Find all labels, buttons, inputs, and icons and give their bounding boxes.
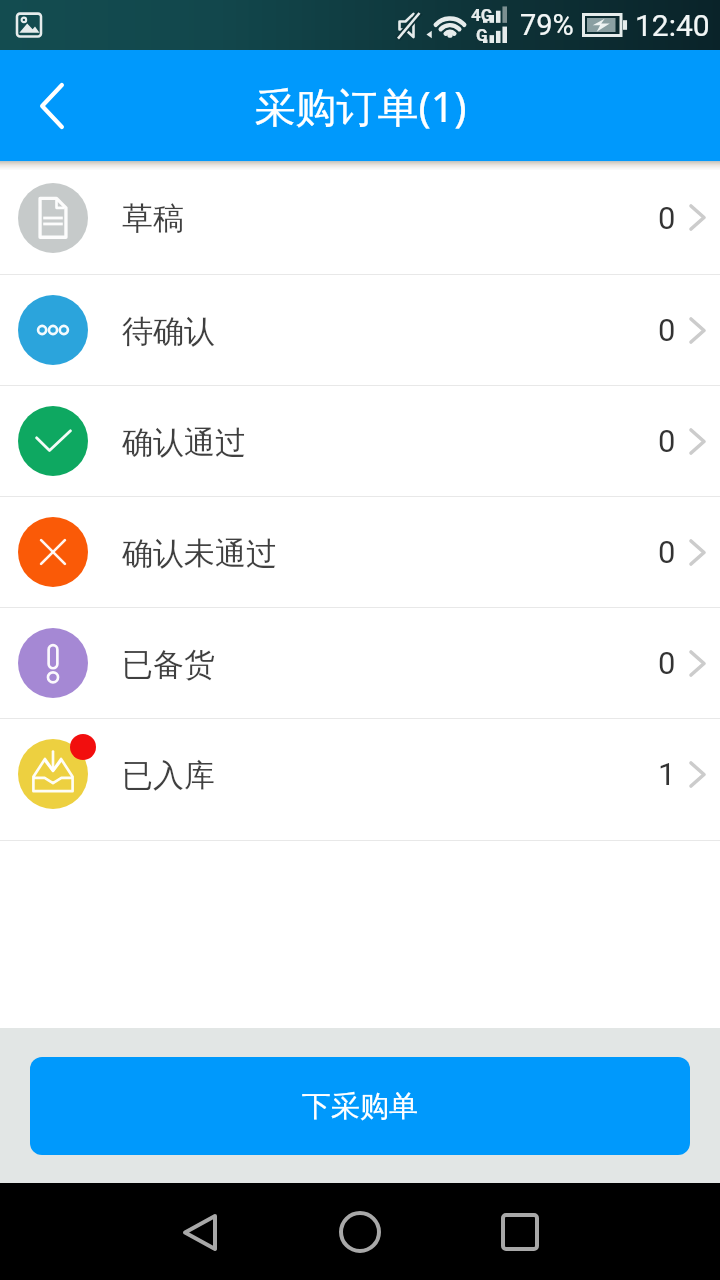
staticText: 0: [658, 312, 676, 348]
staticText: 12:40: [635, 8, 710, 43]
staticText: 已备货: [122, 645, 215, 684]
staticText: 采购订单(1): [254, 78, 467, 134]
button[interactable]: 草稿: [0, 161, 720, 274]
staticText: 已入库: [122, 756, 215, 795]
staticText: G: [476, 25, 488, 45]
button[interactable]: Back: [0, 50, 100, 161]
button[interactable]: Home: [320, 1192, 400, 1272]
staticText: 0: [658, 423, 676, 459]
staticText: 确认未通过: [122, 534, 277, 573]
staticText: 下采购单: [302, 1088, 418, 1125]
button[interactable]: 确认未通过: [0, 497, 720, 607]
staticText: 0: [658, 534, 676, 570]
button[interactable]: Recents: [480, 1192, 560, 1272]
staticText: 4G: [471, 5, 493, 25]
staticText: 0: [658, 200, 676, 236]
staticText: 0: [658, 645, 676, 681]
staticText: 草稿: [122, 199, 184, 238]
staticText: 待确认: [122, 312, 215, 351]
button[interactable]: 待确认: [0, 275, 720, 385]
staticText: 1: [658, 756, 676, 792]
staticText: 79%: [520, 8, 574, 42]
button[interactable]: Back: [160, 1192, 240, 1272]
button[interactable]: 已备货: [0, 608, 720, 718]
button[interactable]: 已入库: [0, 719, 720, 829]
staticText: 确认通过: [122, 423, 246, 462]
button[interactable]: 确认通过: [0, 386, 720, 496]
button[interactable]: 下采购单: [30, 1057, 690, 1155]
